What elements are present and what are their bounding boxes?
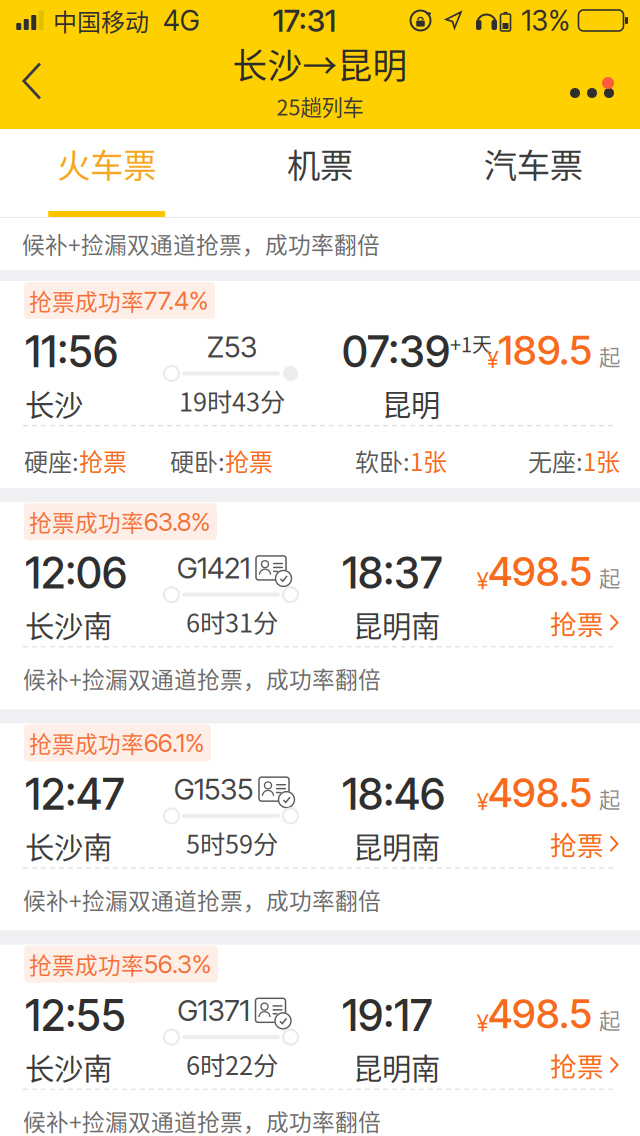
staticText: 66.1% (144, 728, 204, 758)
staticText: 18:37 (342, 547, 443, 599)
staticText: 4G (163, 4, 199, 37)
staticText: 起 (599, 562, 620, 593)
staticText: 抢票成功率 (29, 284, 144, 317)
staticText: 中国移动 (53, 3, 149, 38)
staticText: 19时43分 (179, 382, 285, 419)
staticText: Z53 (207, 329, 257, 364)
staticText: 1张 (583, 443, 620, 478)
staticText: 昆明南 (353, 824, 440, 867)
staticText: 长沙→昆明 (232, 38, 407, 89)
button[interactable]: 抢票成功率 (0, 281, 640, 488)
staticText: 昆明 (382, 382, 440, 424)
staticText: 软卧: (355, 443, 410, 478)
staticText: 起 (599, 340, 620, 371)
staticText: 抢票 (550, 824, 604, 863)
staticText: ¥ (477, 788, 488, 816)
staticText: 长沙南 (25, 603, 112, 646)
staticText: 56.3% (144, 949, 211, 979)
staticText: 189.5 (498, 326, 592, 374)
staticText: G1535 (174, 771, 253, 807)
staticText: 19:17 (342, 990, 433, 1041)
staticText: 12:55 (25, 990, 126, 1041)
button[interactable]: 机票 (213, 129, 427, 217)
button[interactable]: 抢票成功率 (0, 502, 640, 709)
staticText: 抢票 (79, 443, 127, 478)
button[interactable]: 抢票成功率 (0, 723, 640, 931)
staticText: 抢票 (550, 1046, 604, 1084)
button[interactable]: 抢票成功率 (0, 945, 640, 1136)
staticText: 汽车票 (484, 139, 583, 187)
button[interactable]: 火车票 (0, 129, 213, 217)
staticText: 12:47 (25, 768, 125, 820)
staticText: +1天 (450, 329, 492, 358)
staticText: 6时31分 (186, 603, 278, 640)
staticText: 候补+捡漏双通道抢票，成功率翻倍 (23, 1104, 381, 1136)
staticText: 起 (599, 783, 620, 814)
staticText: ¥ (477, 567, 488, 595)
button[interactable]: 汽车票 (427, 129, 640, 217)
staticText: 1张 (410, 443, 447, 478)
staticText: 起 (599, 1004, 620, 1035)
staticText: 长沙南 (25, 824, 112, 867)
staticText: 抢票 (225, 443, 273, 478)
staticText: 昆明南 (353, 1046, 440, 1088)
staticText: 5时59分 (186, 824, 278, 861)
staticText: 无座: (528, 443, 583, 478)
staticText: 77.4% (144, 285, 208, 316)
staticText: G1371 (177, 993, 249, 1028)
staticText: 25趟列车 (276, 91, 363, 122)
staticText: 候补+捡漏双通道抢票，成功率翻倍 (22, 227, 380, 260)
staticText: 抢票成功率 (29, 948, 144, 980)
staticText: 硬卧: (170, 443, 225, 478)
staticText: 长沙南 (25, 1046, 112, 1088)
staticText: 13% (521, 4, 569, 37)
staticText: 11:56 (25, 326, 118, 378)
staticText: 498.5 (488, 768, 592, 817)
staticText: 候补+捡漏双通道抢票，成功率翻倍 (23, 883, 381, 916)
staticText: 长沙 (25, 382, 83, 424)
staticText: 6时22分 (186, 1046, 278, 1082)
staticText: 机票 (287, 139, 353, 187)
button[interactable]: 返回 (0, 41, 64, 129)
staticText: ¥ (477, 1010, 488, 1037)
staticText: 昆明南 (353, 603, 440, 646)
staticText: G1421 (177, 550, 250, 586)
staticText: 18:46 (342, 768, 445, 820)
staticText: 抢票成功率 (29, 505, 144, 538)
staticText: 07:39 (342, 326, 450, 378)
staticText: 498.5 (488, 547, 592, 596)
staticText: 抢票成功率 (29, 726, 144, 759)
staticText: ¥ (487, 346, 498, 373)
button[interactable]: 更多 (550, 41, 640, 129)
staticText: 硬座: (24, 443, 79, 478)
staticText: 498.5 (488, 990, 592, 1038)
staticText: 17:31 (273, 2, 336, 39)
staticText: 63.8% (144, 506, 210, 537)
staticText: 火车票 (57, 139, 156, 187)
staticText: 候补+捡漏双通道抢票，成功率翻倍 (23, 662, 381, 695)
staticText: 抢票 (550, 603, 604, 642)
staticText: 12:06 (25, 547, 127, 599)
